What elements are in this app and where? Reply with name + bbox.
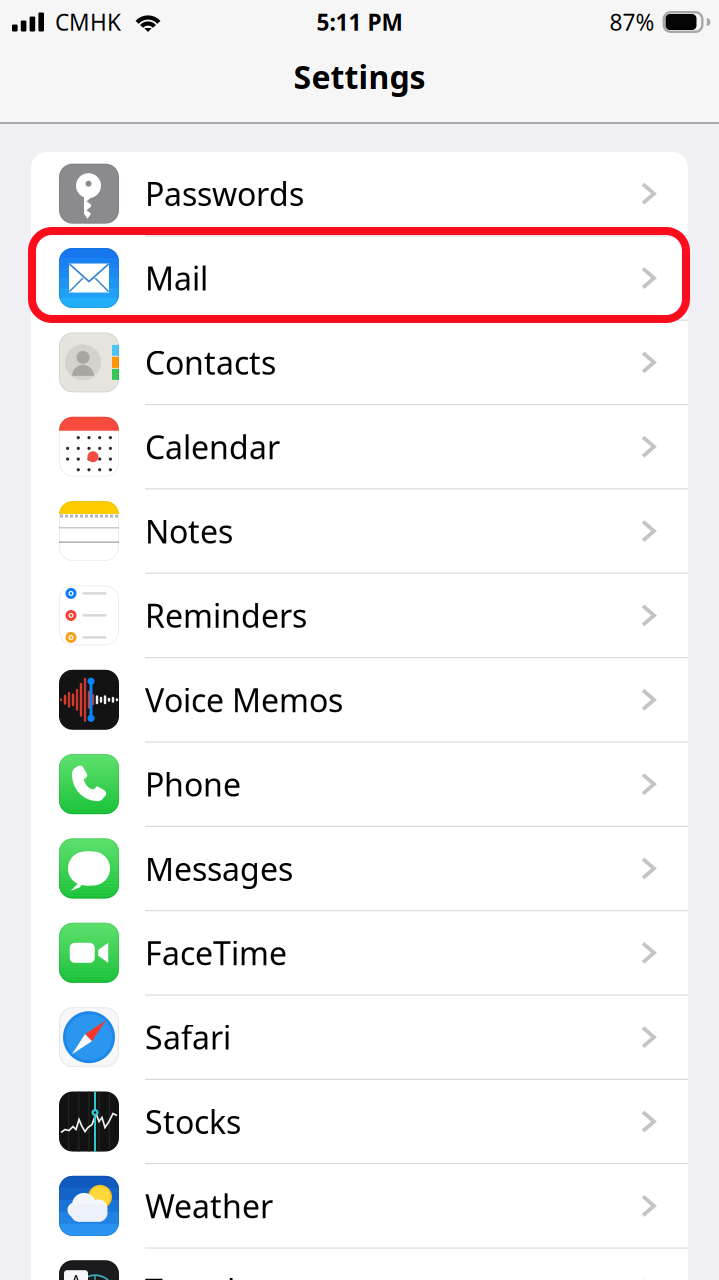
- staticText: Safari: [145, 1015, 231, 1059]
- button[interactable]: Notes: [31, 489, 688, 574]
- staticText: Messages: [145, 847, 293, 890]
- staticText: 5:11 PM: [316, 7, 402, 37]
- staticText: Passwords: [145, 172, 304, 215]
- staticText: Mail: [145, 256, 208, 300]
- staticText: Notes: [145, 509, 233, 553]
- staticText: Translate: [145, 1268, 283, 1280]
- staticText: Calendar: [145, 425, 280, 468]
- staticText: Contacts: [145, 341, 276, 384]
- button[interactable]: Reminders: [31, 574, 688, 658]
- button[interactable]: Messages: [31, 827, 688, 911]
- staticText: Voice Memos: [145, 678, 343, 722]
- staticText: CMHK: [55, 7, 121, 37]
- staticText: Reminders: [145, 594, 307, 637]
- button[interactable]: Weather: [31, 1164, 688, 1248]
- staticText: A: [70, 1269, 81, 1280]
- button[interactable]: A: [31, 1249, 688, 1280]
- button[interactable]: Phone: [31, 742, 688, 827]
- staticText: 87%: [609, 7, 654, 37]
- button[interactable]: FaceTime: [31, 911, 688, 995]
- button[interactable]: Passwords: [31, 152, 688, 236]
- button[interactable]: Mail: [31, 236, 688, 321]
- staticText: Phone: [145, 762, 241, 806]
- button[interactable]: Calendar: [31, 405, 688, 489]
- button[interactable]: Voice Memos: [31, 658, 688, 742]
- staticText: Settings: [293, 55, 425, 98]
- button[interactable]: Safari: [31, 995, 688, 1080]
- button[interactable]: Contacts: [31, 321, 688, 405]
- staticText: FaceTime: [145, 931, 287, 975]
- button[interactable]: Stocks: [31, 1080, 688, 1164]
- staticText: Stocks: [145, 1100, 241, 1143]
- staticText: Weather: [145, 1184, 273, 1228]
